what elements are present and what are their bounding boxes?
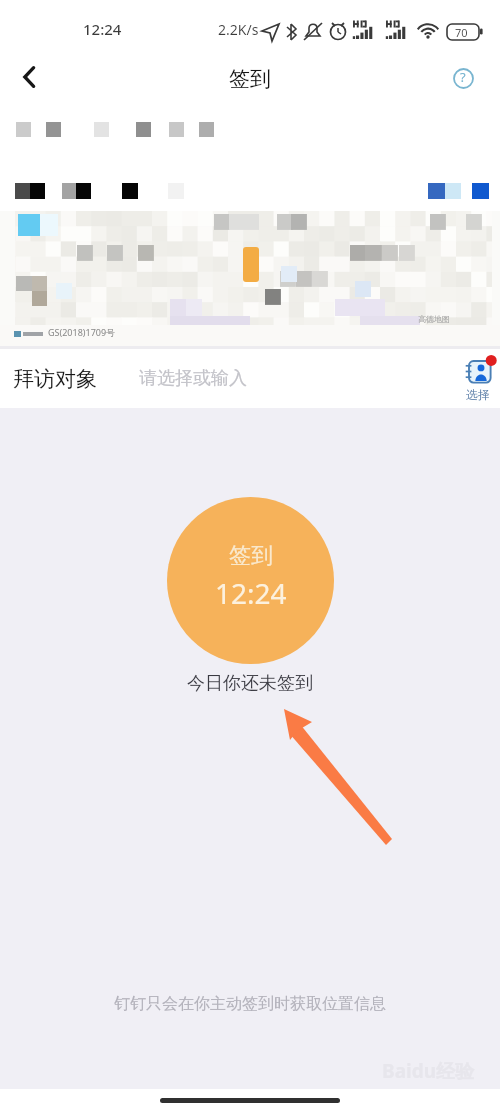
- staticText: 12:24: [215, 574, 287, 612]
- staticText: 2.2K/s: [218, 20, 259, 39]
- staticText: 钉钉只会在你主动签到时获取位置信息: [114, 994, 386, 1014]
- staticText: 70: [455, 25, 468, 40]
- button[interactable]: 签到: [167, 497, 334, 664]
- staticText: 拜访对象: [13, 366, 97, 392]
- staticText: 选择: [466, 387, 490, 402]
- staticText: GS(2018)1709号: [48, 326, 116, 338]
- staticText: 签到: [229, 542, 273, 570]
- staticText: ?: [460, 68, 466, 86]
- button[interactable]: Help: [446, 61, 480, 95]
- staticText: 签到: [229, 66, 271, 92]
- staticText: 高德地图: [418, 314, 450, 324]
- staticText: Baidu经验: [382, 1058, 475, 1084]
- button[interactable]: Back: [10, 57, 50, 97]
- button[interactable]: Select contact: [463, 356, 493, 401]
- staticText: 12:24: [83, 19, 122, 39]
- staticText: 请选择或输入: [139, 367, 247, 390]
- staticText: 今日你还未签到: [187, 672, 313, 695]
- button[interactable]: 拜访对象: [0, 349, 500, 408]
